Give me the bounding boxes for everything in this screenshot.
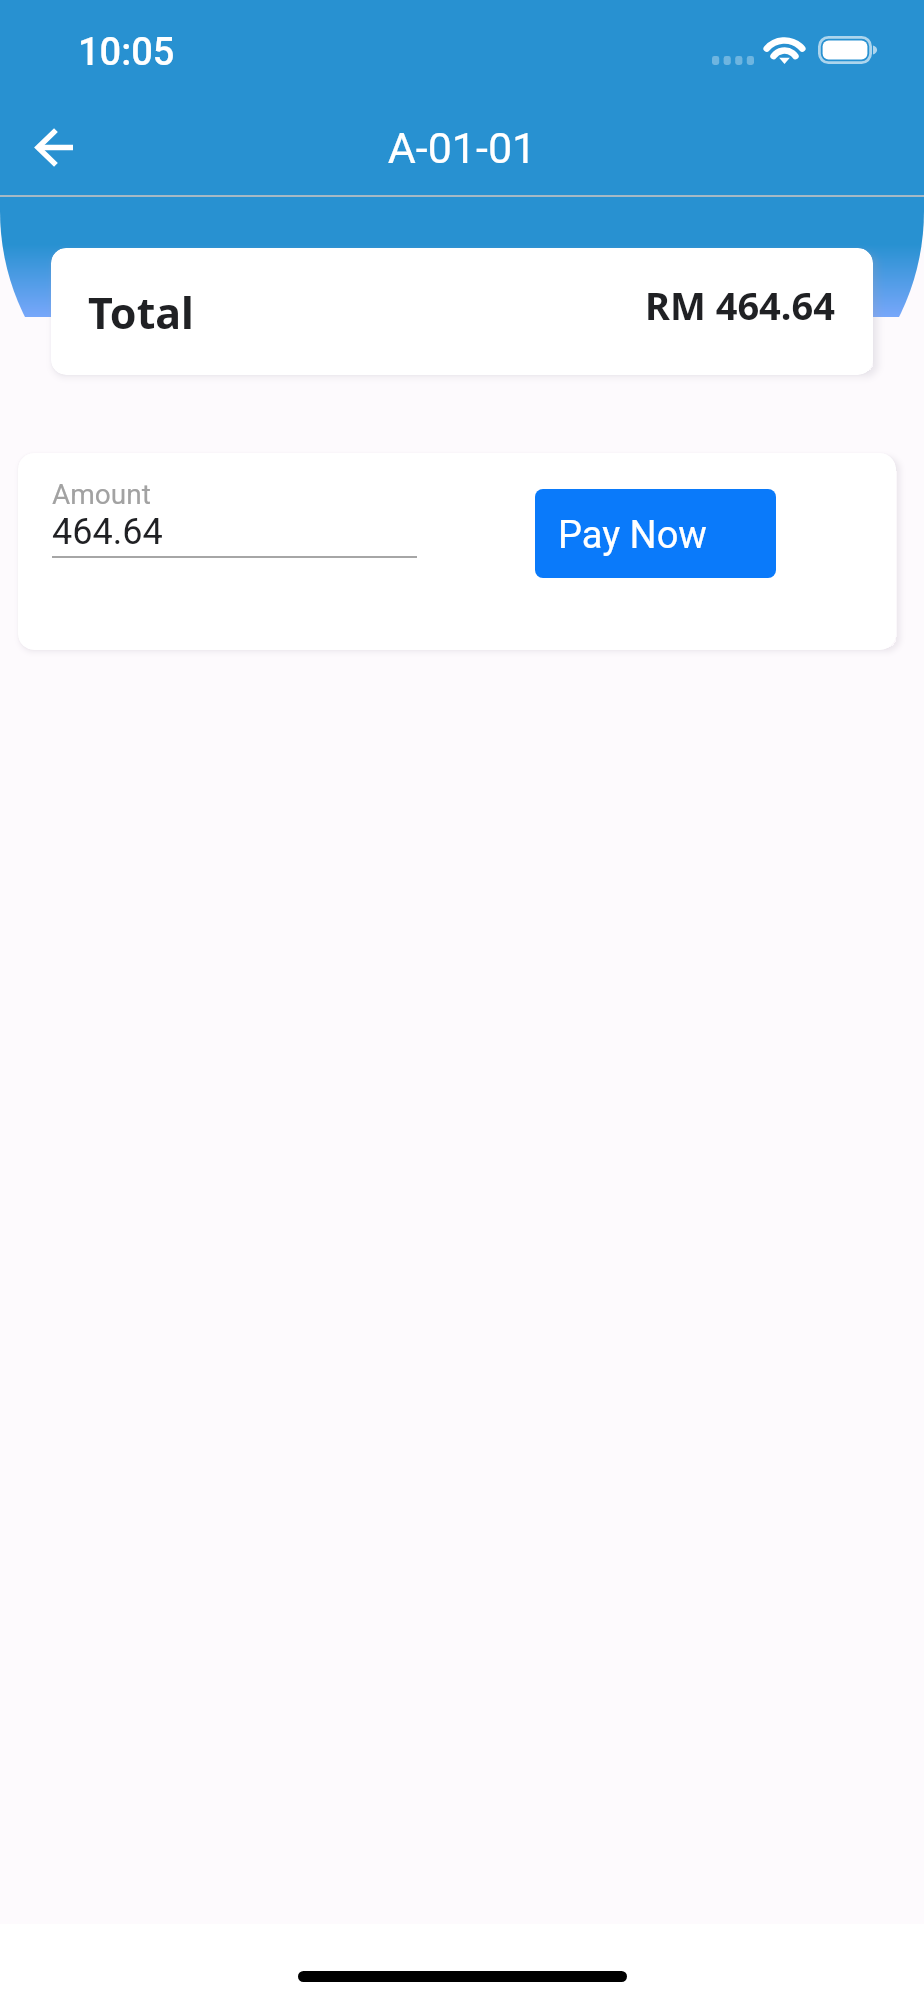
staticText: Pay Now [558, 513, 707, 558]
staticText: 464.64 [52, 511, 163, 553]
button[interactable]: Total [51, 248, 873, 375]
staticText: Amount [52, 478, 151, 511]
staticText: 10:05 [78, 30, 175, 75]
staticText: RM 464.64 [645, 279, 836, 331]
staticText: Total [88, 283, 194, 342]
button[interactable]: Back [8, 101, 100, 193]
button[interactable]: Pay Now [535, 489, 776, 578]
staticText: A-01-01 [0, 123, 924, 173]
